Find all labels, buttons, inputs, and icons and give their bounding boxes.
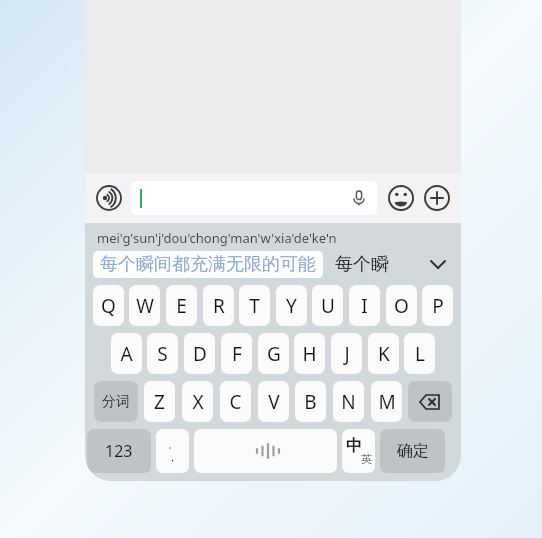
staticText: 123 xyxy=(105,440,133,462)
staticText: L xyxy=(415,341,425,367)
button[interactable]: C xyxy=(220,381,251,422)
button[interactable]: V xyxy=(258,381,289,422)
button[interactable]: Voice input xyxy=(93,182,125,214)
staticText: B xyxy=(304,389,317,415)
staticText: 中 xyxy=(346,436,362,456)
staticText: M xyxy=(378,389,396,415)
button[interactable]: 每个瞬 xyxy=(333,253,391,276)
button[interactable]: A xyxy=(111,333,142,374)
staticText: T xyxy=(249,293,260,319)
staticText: A xyxy=(120,341,133,367)
staticText: S xyxy=(157,341,168,367)
button[interactable]: Expand candidates xyxy=(423,249,453,279)
button[interactable]: L xyxy=(404,333,435,374)
staticText: J xyxy=(344,341,350,367)
staticText: Y xyxy=(286,293,297,319)
button[interactable]: E xyxy=(166,285,197,326)
staticText: K xyxy=(378,341,390,367)
staticText: X xyxy=(192,389,204,415)
button[interactable]: 分词 xyxy=(94,381,138,422)
button[interactable]: M xyxy=(371,381,402,422)
staticText: Z xyxy=(154,389,165,415)
staticText: I xyxy=(361,293,368,319)
button[interactable]: Space xyxy=(194,429,337,473)
button[interactable]: T xyxy=(239,285,270,326)
button[interactable]: X xyxy=(182,381,213,422)
button[interactable]: H xyxy=(294,333,325,374)
button[interactable]: U xyxy=(312,285,343,326)
staticText: G xyxy=(267,341,281,367)
button[interactable]: 。 xyxy=(156,429,189,473)
staticText: E xyxy=(176,293,187,319)
staticText: 分词 xyxy=(102,393,130,411)
staticText: U xyxy=(321,293,335,319)
button[interactable]: K xyxy=(368,333,399,374)
button[interactable]: D xyxy=(184,333,215,374)
button[interactable]: R xyxy=(203,285,234,326)
staticText: N xyxy=(341,389,356,415)
staticText: V xyxy=(268,389,280,415)
button[interactable]: 123 xyxy=(87,429,151,473)
button[interactable]: Y xyxy=(276,285,307,326)
button[interactable]: W xyxy=(129,285,160,326)
staticText: 确定 xyxy=(397,441,429,461)
button[interactable]: B xyxy=(295,381,326,422)
staticText: 每个瞬间都充满无限的可能 xyxy=(100,253,316,276)
button[interactable]: F xyxy=(221,333,252,374)
staticText: Q xyxy=(101,293,116,319)
button[interactable]: Emoji xyxy=(385,182,417,214)
button[interactable]: G xyxy=(258,333,289,374)
staticText: H xyxy=(302,341,317,367)
button[interactable]: Z xyxy=(144,381,175,422)
button[interactable]: P xyxy=(422,285,453,326)
staticText: 每个瞬 xyxy=(335,253,389,276)
button[interactable]: I xyxy=(349,285,380,326)
button[interactable]: N xyxy=(333,381,364,422)
staticText: 。 xyxy=(168,439,177,450)
staticText: 英 xyxy=(361,452,372,466)
button[interactable]: More xyxy=(421,182,453,214)
staticText: C xyxy=(229,389,242,415)
staticText: W xyxy=(136,293,154,319)
staticText: ， xyxy=(167,450,178,464)
button[interactable]: 每个瞬间都充满无限的可能 xyxy=(93,251,323,278)
button[interactable]: 确定 xyxy=(380,429,445,473)
staticText: mei'g'sun'j'dou'chong'man'w'xia'de'ke'n xyxy=(97,229,337,247)
staticText: F xyxy=(232,341,242,367)
staticText: D xyxy=(193,341,207,367)
button[interactable] xyxy=(131,181,377,215)
button[interactable]: J xyxy=(331,333,362,374)
staticText: R xyxy=(213,293,225,319)
button[interactable]: Chinese English toggle xyxy=(342,429,375,473)
button[interactable]: Backspace xyxy=(408,381,452,422)
button[interactable]: Q xyxy=(93,285,124,326)
button[interactable]: O xyxy=(386,285,417,326)
staticText: P xyxy=(432,293,444,319)
staticText: O xyxy=(394,293,409,319)
button[interactable]: S xyxy=(147,333,178,374)
